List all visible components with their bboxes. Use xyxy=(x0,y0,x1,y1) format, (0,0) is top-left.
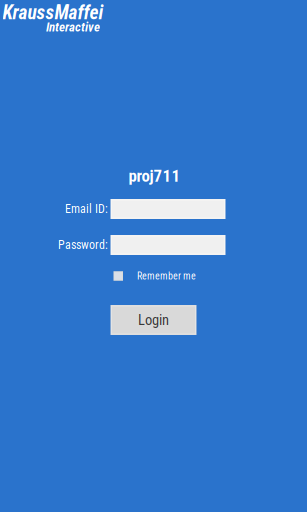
button[interactable]: Login xyxy=(110,305,196,335)
staticText: KraussMaffei xyxy=(2,1,103,24)
staticText: proj711 xyxy=(128,166,180,186)
staticText: Password: xyxy=(58,238,108,252)
staticText: Email ID: xyxy=(65,202,108,216)
staticText: Remember me xyxy=(137,270,196,282)
staticText: Interactive xyxy=(46,19,100,35)
button[interactable]: Remember me xyxy=(113,268,228,284)
staticText: Login xyxy=(138,311,169,328)
